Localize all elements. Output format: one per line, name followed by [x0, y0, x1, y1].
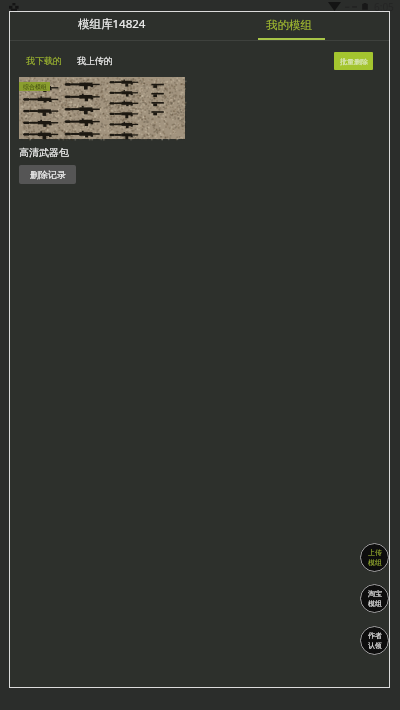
staticText: 6:05 [374, 0, 394, 14]
staticText: 上传 [368, 548, 382, 557]
button[interactable]: 我下载的 [22, 52, 66, 69]
staticText: 模组库14824 [78, 16, 146, 32]
staticText: 我上传的 [77, 55, 113, 66]
staticText: 我下载的 [26, 55, 62, 66]
staticText: 认领 [368, 641, 382, 650]
button[interactable]: 我的模组 [251, 11, 327, 39]
staticText: 删除记录 [30, 169, 66, 180]
button[interactable]: 删除记录 [19, 165, 76, 184]
button[interactable]: 综合模组 [19, 77, 185, 139]
staticText: 模组 [368, 599, 382, 608]
button[interactable]: 作者认领 [360, 626, 389, 655]
button[interactable]: 我上传的 [73, 52, 117, 69]
staticText: 淘宝 [368, 589, 382, 598]
staticText: 模组 [368, 558, 382, 567]
staticText: 作者 [368, 631, 382, 640]
staticText: 我的模组 [266, 18, 312, 32]
button[interactable]: 上传模组 [360, 543, 389, 572]
staticText: 批量删除 [340, 57, 368, 66]
staticText: 高清武器包 [19, 146, 69, 159]
button[interactable]: 淘宝模组 [360, 584, 389, 613]
button[interactable]: 批量删除 [334, 52, 373, 70]
staticText: 综合模组 [23, 83, 47, 91]
